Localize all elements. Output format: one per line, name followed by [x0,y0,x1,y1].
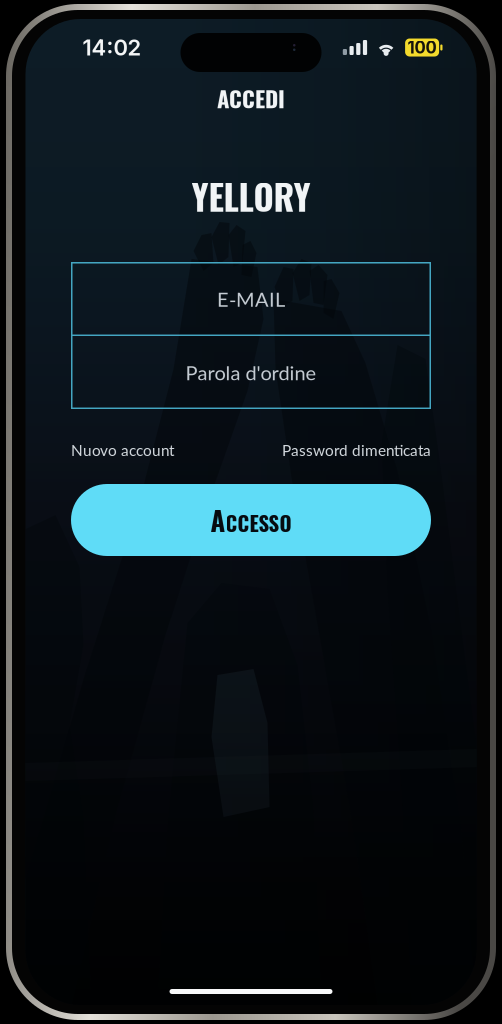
button[interactable]: Password dimenticata [282,439,431,461]
staticText: YELLORY [191,170,310,222]
staticText: Password dimenticata [282,441,431,459]
button[interactable]: Nuovo account [71,439,174,461]
staticText: ACCEDI [217,81,285,115]
button[interactable]: A [71,484,431,556]
staticText: 100 [408,37,437,58]
staticText: E-MAIL [217,287,285,311]
staticText: CCESSO [225,507,291,538]
button[interactable]: Parola d'ordine [71,336,431,409]
staticText: Parola d'ordine [185,360,316,384]
button[interactable]: E-MAIL [71,262,431,336]
staticText: 14:02 [82,34,141,61]
staticText: A [210,500,225,540]
staticText: Nuovo account [71,441,174,459]
